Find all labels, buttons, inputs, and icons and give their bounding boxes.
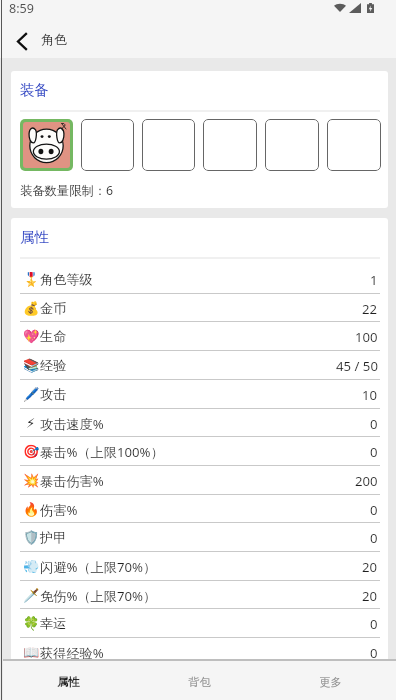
staticText: 20 [362,587,378,605]
staticText: 闪避%（上限70%） [40,558,157,576]
button[interactable]: 💰 [11,294,388,323]
button[interactable]: 背包 [134,661,265,700]
staticText: 角色 [41,31,67,47]
staticText: 📚 [23,358,38,373]
staticText: 暴击%（上限100%） [40,443,164,461]
button[interactable]: 🖊 [11,380,388,409]
staticText: 0 [370,443,378,461]
button[interactable]: Empty equipment slot [327,119,381,171]
button[interactable]: Empty equipment slot [265,119,319,171]
staticText: 🗡 [23,588,38,603]
button[interactable]: 💖 [11,322,388,351]
staticText: 暴击伤害% [40,472,104,490]
staticText: 金币 [40,300,67,317]
button[interactable]: Back [6,26,36,56]
staticText: 攻击速度% [40,415,104,433]
button[interactable]: 📖 [11,638,388,667]
staticText: 0 [370,415,378,433]
staticText: 属性 [20,228,50,246]
staticText: 免伤%（上限70%） [40,587,157,605]
button[interactable]: 🎖 [11,265,388,294]
staticText: ⚡ [26,416,36,431]
staticText: 生命 [40,328,67,345]
button[interactable]: 💥 [11,466,388,495]
staticText: 1 [370,271,378,289]
button[interactable]: 🛡 [11,523,388,552]
button[interactable]: 🗡 [11,581,388,610]
staticText: 🛡 [23,530,38,545]
staticText: 🎯 [23,444,38,459]
button[interactable]: ⚡ [11,409,388,438]
staticText: 🖊 [23,387,38,402]
staticText: 22 [362,300,378,318]
button[interactable]: 更多 [265,661,396,700]
staticText: 属性 [57,675,80,689]
staticText: 经验 [40,357,67,374]
staticText: 💨 [23,559,38,574]
staticText: 💥 [23,473,38,488]
staticText: 💖 [23,329,38,344]
staticText: 0 [370,615,378,633]
staticText: 20 [362,558,378,576]
staticText: 0 [370,529,378,547]
staticText: 更多 [319,675,342,689]
staticText: 200 [355,472,378,490]
staticText: 🔥 [23,502,38,517]
staticText: 0 [370,644,378,662]
button[interactable]: 📚 [11,351,388,380]
staticText: 装备 [20,81,50,99]
button[interactable]: 🍀 [11,609,388,638]
staticText: 💰 [23,301,38,316]
button[interactable]: Empty equipment slot [81,119,134,171]
button[interactable]: Empty equipment slot [203,119,257,171]
staticText: 45 / 50 [336,357,378,375]
staticText: 10 [362,386,378,404]
staticText: 背包 [188,675,211,689]
button[interactable]: Empty equipment slot [142,119,195,171]
staticText: 攻击 [40,386,67,403]
staticText: 伤害% [40,501,78,519]
staticText: 护甲 [40,529,67,546]
staticText: 幸运 [40,615,67,632]
staticText: 🎖 [23,272,38,287]
staticText: 装备数量限制：6 [20,182,114,199]
button[interactable]: 🔥 [11,495,388,524]
staticText: 0 [370,501,378,519]
staticText: 100 [355,328,378,346]
button[interactable]: 属性 [3,661,134,700]
button[interactable]: 💨 [11,552,388,581]
button[interactable]: Equipped item: pig [23,122,70,168]
staticText: 🍀 [23,616,38,631]
staticText: 📖 [23,645,38,660]
staticText: 获得经验% [40,644,104,662]
button[interactable]: 🎯 [11,437,388,466]
staticText: 8:59 [9,0,34,17]
staticText: 角色等级 [40,271,93,288]
